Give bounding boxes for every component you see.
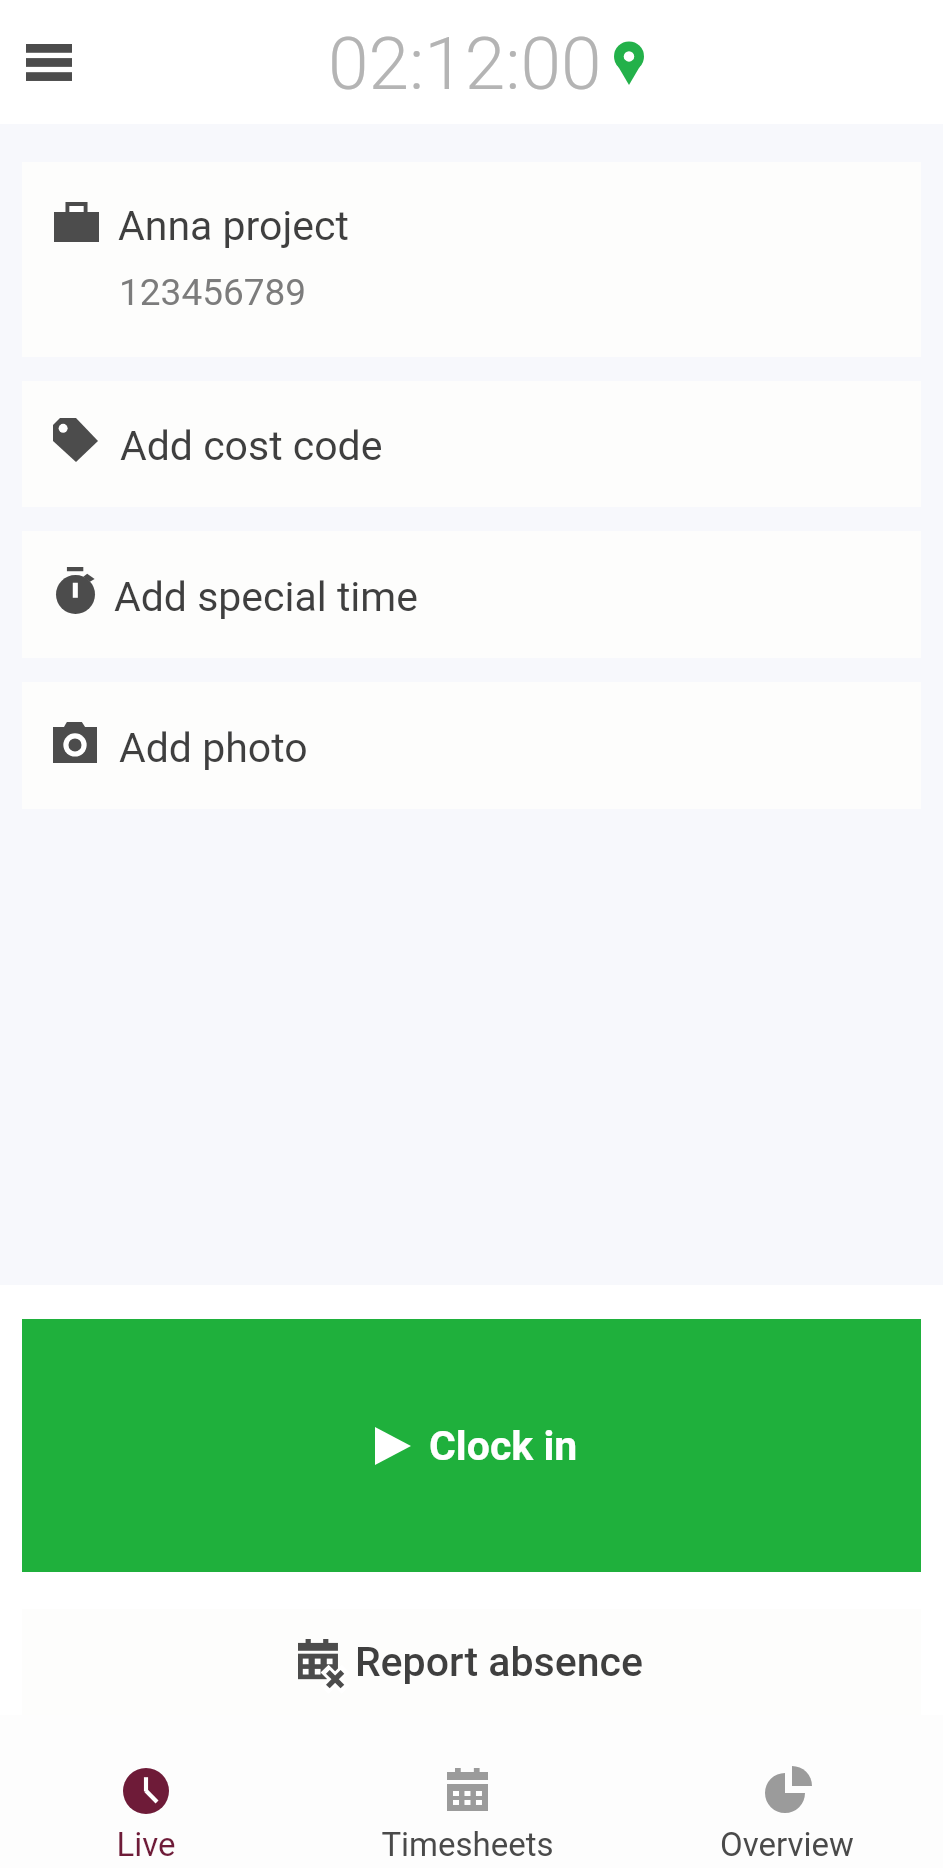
button[interactable]: Add special time (22, 531, 921, 658)
staticText: Timesheets (381, 1825, 554, 1864)
button[interactable]: Add photo (22, 682, 921, 809)
staticText: Live (116, 1825, 176, 1864)
button[interactable]: Clock in (22, 1319, 921, 1572)
button[interactable]: Anna project (22, 162, 921, 357)
staticText: Overview (720, 1825, 854, 1864)
button[interactable]: Open navigation menu (9, 22, 89, 102)
staticText: Clock in (429, 1422, 578, 1470)
button[interactable]: Report absence (22, 1609, 921, 1715)
button[interactable]: Add cost code (22, 381, 921, 507)
staticText: Report absence (355, 1638, 644, 1686)
button[interactable]: Overview (642, 1715, 939, 1868)
button[interactable]: Timesheets (292, 1715, 642, 1868)
staticText: Add cost code (120, 422, 383, 470)
staticText: 02:12:00 (328, 21, 602, 107)
staticText: Add photo (119, 724, 308, 772)
staticText: 123456789 (119, 271, 307, 314)
staticText: Add special time (114, 573, 419, 621)
staticText: Anna project (118, 202, 349, 250)
button[interactable]: Live (0, 1715, 292, 1868)
